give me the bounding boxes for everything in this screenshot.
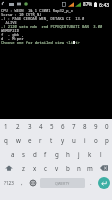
button[interactable]: z	[18, 161, 29, 175]
staticText: -) 2120 sata ndo rnd PCPEQIBTUBATI BAN 3…	[1, 24, 103, 29]
staticText: 3	[28, 122, 32, 130]
staticText: s	[22, 150, 25, 158]
staticText: i	[84, 136, 86, 144]
button[interactable]: v	[51, 161, 62, 175]
button[interactable]: h	[62, 147, 73, 161]
staticText: 4	[39, 122, 43, 130]
staticText: z	[22, 164, 25, 172]
staticText: f - gbk ,	[1, 32, 24, 37]
button[interactable]: m	[84, 161, 95, 175]
staticText: l	[100, 150, 102, 158]
button[interactable]: k	[84, 147, 95, 161]
staticText: o	[94, 136, 98, 144]
button[interactable]: 3	[24, 119, 35, 133]
button[interactable]: r	[35, 133, 46, 147]
staticText: Scrsw : 10 CVTR_NJ	[1, 12, 42, 17]
staticText: b	[66, 164, 70, 172]
staticText: 9	[94, 122, 98, 130]
staticText: ALIVE	[1, 20, 17, 25]
button[interactable]: 1	[0, 119, 12, 133]
staticText: Choose one for detailed view <list>	[1, 40, 80, 45]
staticText: p	[105, 136, 109, 144]
staticText: c	[44, 164, 47, 172]
staticText: 2	[16, 122, 20, 130]
staticText: w	[16, 136, 21, 144]
button[interactable]: x	[29, 161, 40, 175]
button[interactable]: e	[24, 133, 35, 147]
button[interactable]: Shift	[0, 161, 18, 175]
button[interactable]: 5	[46, 119, 57, 133]
staticText: x	[33, 164, 37, 172]
staticText: .	[90, 179, 92, 187]
staticText: n	[77, 164, 81, 172]
button[interactable]: 8	[79, 119, 90, 133]
button[interactable]: j	[73, 147, 84, 161]
button[interactable]: y	[57, 133, 68, 147]
button[interactable]: s	[18, 147, 29, 161]
button[interactable]: ?123	[0, 175, 17, 191]
button[interactable]: t	[46, 133, 57, 147]
staticText: 1	[4, 122, 8, 130]
button[interactable]: n	[73, 161, 84, 175]
button[interactable]: g	[51, 147, 62, 161]
staticText: e	[28, 136, 32, 144]
staticText: 6:43	[99, 1, 110, 8]
button[interactable]: q	[0, 133, 12, 147]
staticText: f	[44, 150, 47, 158]
button[interactable]: 7	[68, 119, 79, 133]
staticText: WEMOP2ID	[1, 28, 20, 33]
button[interactable]: b	[62, 161, 73, 175]
button[interactable]: 4	[35, 119, 46, 133]
staticText: d - M:per	[1, 36, 24, 41]
button[interactable]: 9	[90, 119, 101, 133]
button[interactable]: p	[101, 133, 112, 147]
staticText: a	[11, 150, 15, 158]
staticText: QWERTY	[55, 181, 70, 186]
staticText: -) : PAGE CEROAR WEN, DETAKA CI 13.0	[1, 16, 85, 21]
staticText: t	[50, 136, 53, 144]
staticText: 0	[105, 122, 109, 130]
staticText: r	[39, 136, 42, 144]
button[interactable]: Change language	[27, 175, 39, 191]
staticText: v	[55, 164, 59, 172]
button[interactable]: a	[7, 147, 18, 161]
button[interactable]: d	[29, 147, 40, 161]
staticText: k	[88, 150, 92, 158]
button[interactable]: o	[90, 133, 101, 147]
staticText: q	[4, 136, 8, 144]
button[interactable]: Backspace	[95, 161, 112, 175]
staticText: d	[33, 150, 37, 158]
button[interactable]: l	[95, 147, 106, 161]
staticText: 8	[83, 122, 87, 130]
button[interactable]: c	[40, 161, 51, 175]
button[interactable]: w	[12, 133, 24, 147]
staticText: 7	[72, 122, 76, 130]
button[interactable]: u	[68, 133, 79, 147]
button[interactable]: Enter	[95, 175, 112, 191]
button[interactable]: 0	[101, 119, 112, 133]
button[interactable]: .	[86, 175, 95, 191]
staticText: j	[78, 150, 80, 158]
button[interactable]: f	[40, 147, 51, 161]
staticText: 6	[61, 122, 65, 130]
staticText: h	[66, 150, 70, 158]
staticText: ,	[21, 179, 23, 187]
button[interactable]: i	[79, 133, 90, 147]
button[interactable]: 6	[57, 119, 68, 133]
staticText: 5	[50, 122, 54, 130]
staticText: g	[55, 150, 59, 158]
staticText: 87%	[83, 1, 93, 7]
button[interactable]: 2	[12, 119, 24, 133]
staticText: ?123	[4, 180, 14, 186]
button[interactable]: ,	[17, 175, 27, 191]
staticText: u	[72, 136, 76, 144]
staticText: y	[61, 136, 65, 144]
button[interactable]: QWERTY	[40, 178, 85, 188]
staticText: CPU : WEON 1&,1 C3001 Rap32_p_x	[1, 8, 74, 13]
staticText: m	[87, 164, 93, 172]
